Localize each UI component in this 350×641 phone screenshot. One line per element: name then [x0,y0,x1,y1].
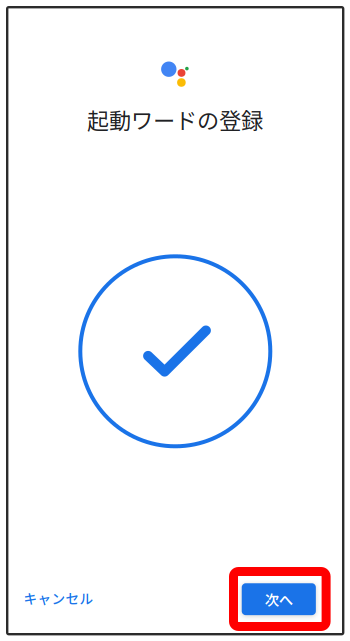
staticText: 起動ワードの登録 [87,103,263,135]
staticText: 次へ [265,589,293,610]
staticText: キャンセル [24,588,94,608]
button[interactable]: キャンセル [17,580,101,616]
button[interactable]: 次へ [242,583,316,615]
